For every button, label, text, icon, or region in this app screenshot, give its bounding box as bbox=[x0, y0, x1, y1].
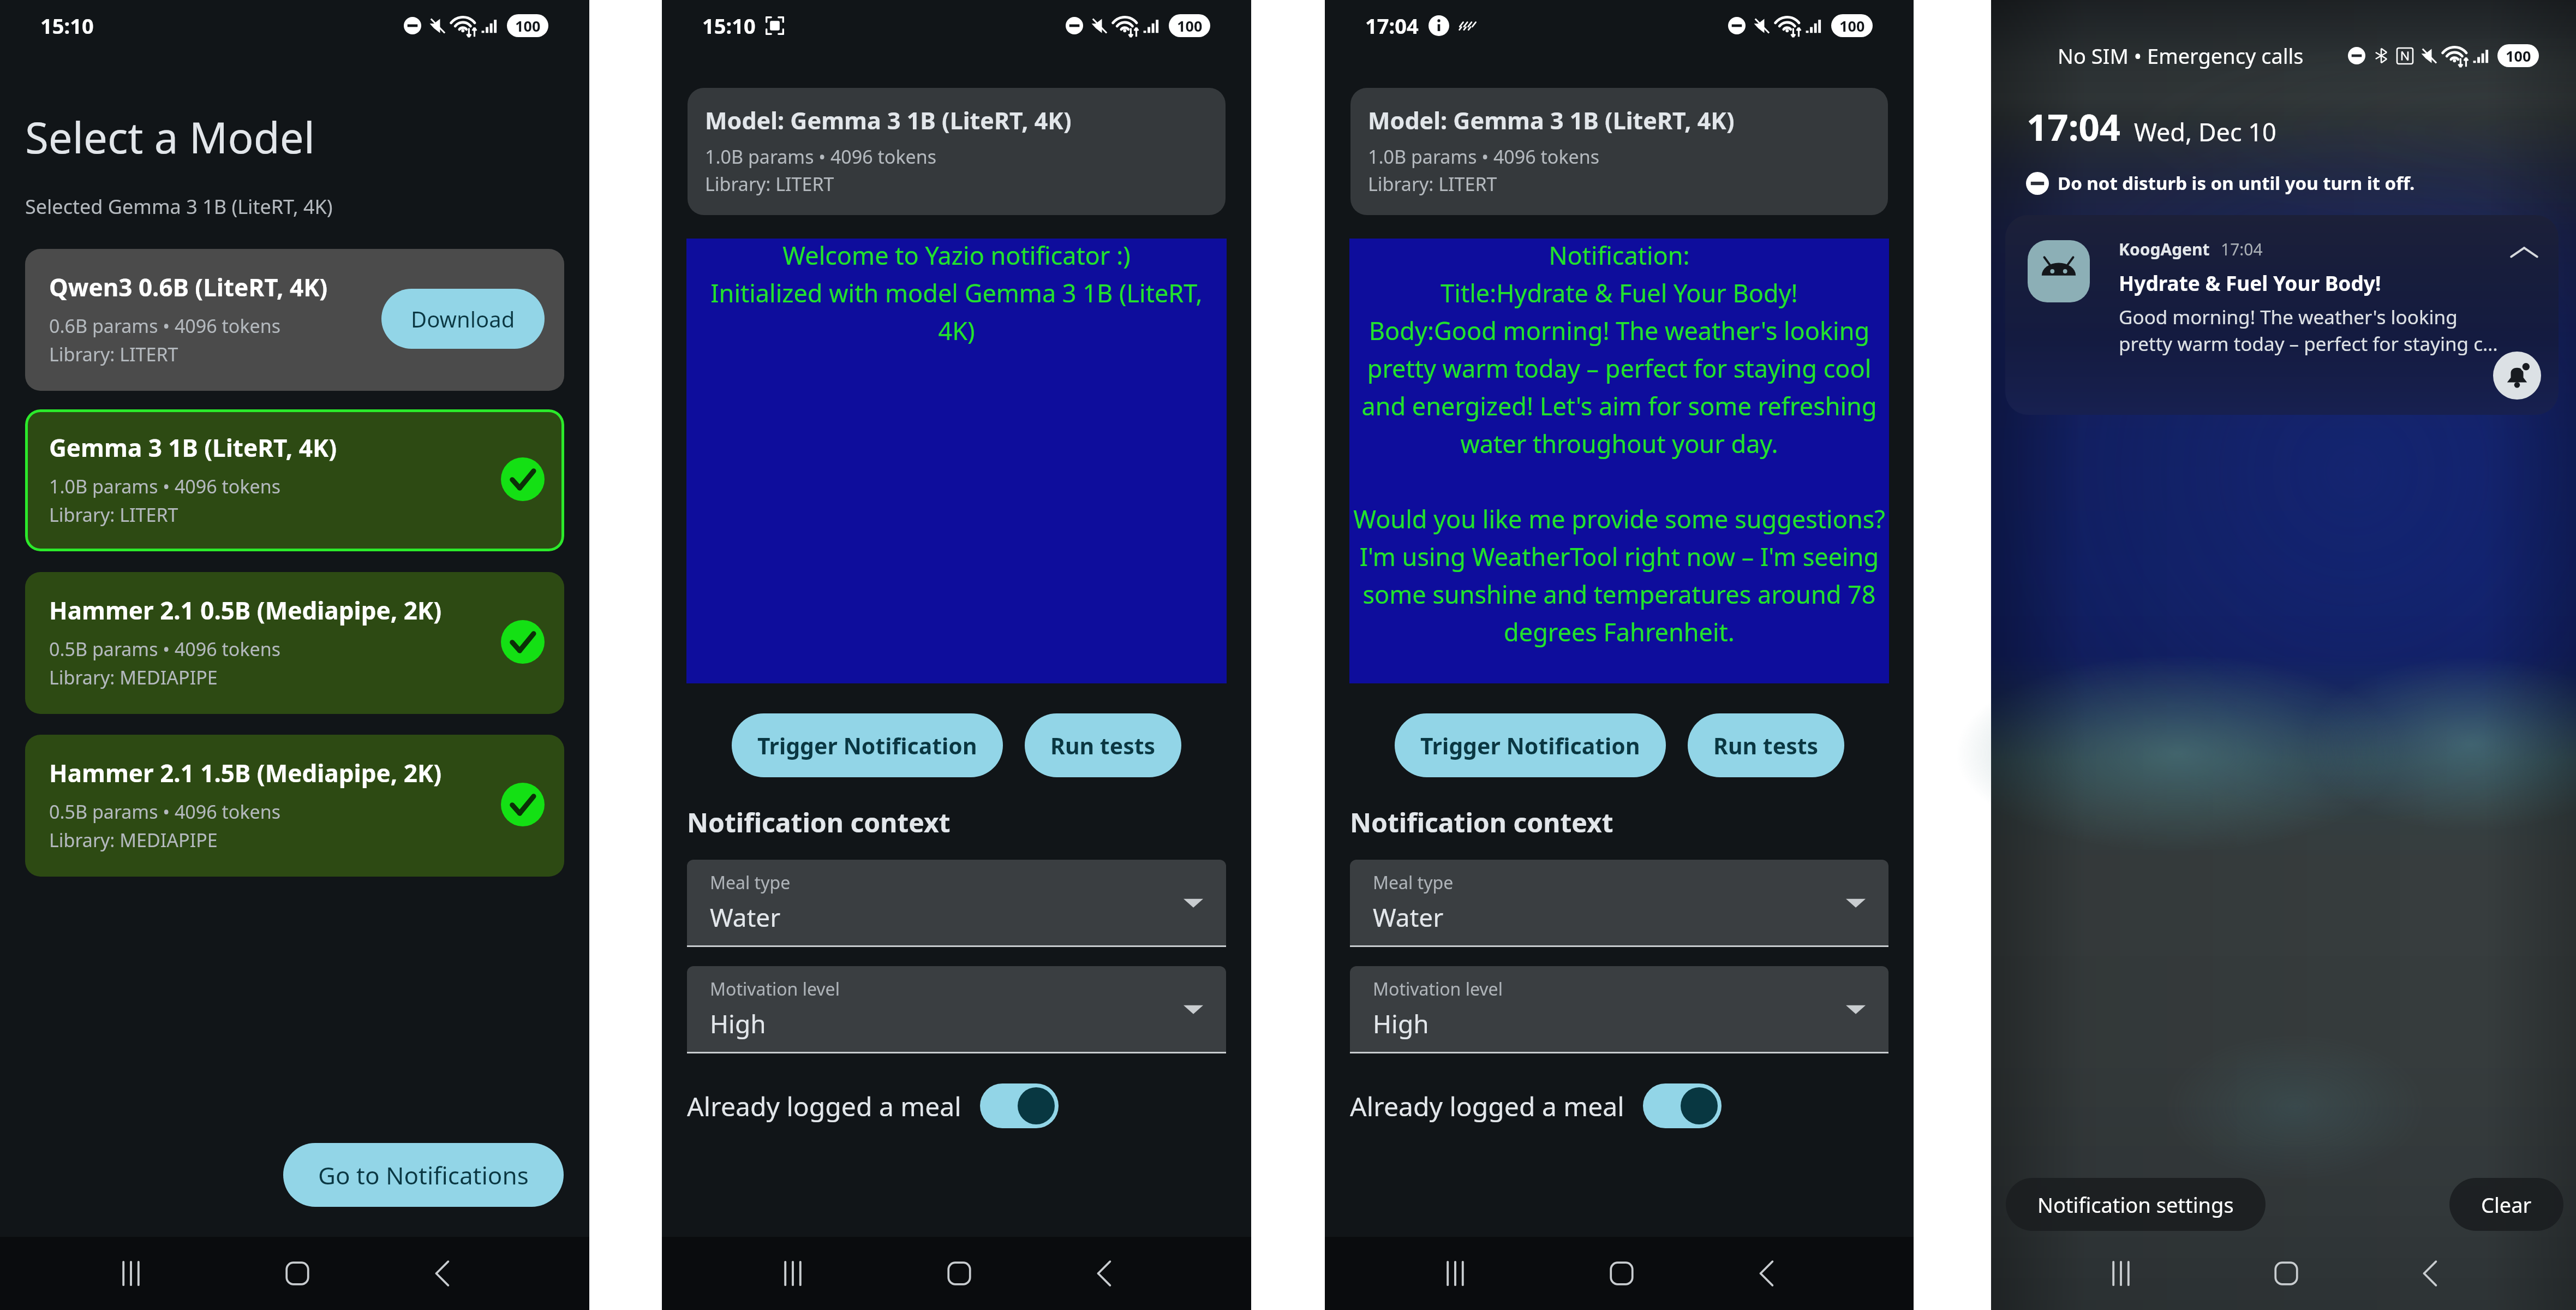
staticText: 0.5B params • 4096 tokens bbox=[49, 799, 281, 824]
button[interactable]: Recents bbox=[86, 1237, 176, 1310]
staticText: Motivation level bbox=[1373, 977, 1503, 1001]
staticText: Notification settings bbox=[2037, 1190, 2234, 1219]
button[interactable]: Model: Gemma 3 1B (LiteRT, 4K) bbox=[688, 88, 1226, 215]
button[interactable]: Run tests bbox=[1025, 713, 1181, 777]
button[interactable]: Clear bbox=[2449, 1178, 2563, 1231]
staticText: Do not disturb is on until you turn it o… bbox=[2058, 171, 2415, 195]
staticText: Library: LITERT bbox=[49, 342, 178, 367]
staticText: Hammer 2.1 0.5B (Mediapipe, 2K) bbox=[49, 594, 442, 627]
staticText: Trigger Notification bbox=[1420, 730, 1640, 761]
staticText: Library: LITERT bbox=[1368, 171, 1497, 196]
button[interactable]: Back bbox=[2386, 1237, 2475, 1310]
staticText: Trigger Notification bbox=[757, 730, 977, 761]
button[interactable]: Meal type bbox=[1350, 860, 1888, 945]
button[interactable]: Back bbox=[1722, 1237, 1812, 1310]
staticText: Good morning! The weather's looking pret… bbox=[2119, 304, 2498, 357]
staticText: Library: MEDIAPIPE bbox=[49, 827, 218, 853]
staticText: KoogAgent bbox=[2119, 238, 2210, 260]
button[interactable]: Run tests bbox=[1688, 713, 1844, 777]
button[interactable]: Download bbox=[381, 289, 545, 349]
staticText: 17:04 bbox=[2221, 238, 2263, 260]
button[interactable]: Trigger Notification bbox=[732, 713, 1003, 777]
staticText: Meal type bbox=[1373, 871, 1454, 895]
staticText: High bbox=[1373, 1007, 1429, 1041]
button[interactable]: Back bbox=[1060, 1237, 1149, 1310]
button[interactable]: Trigger Notification bbox=[1395, 713, 1666, 777]
button[interactable]: Recents bbox=[748, 1237, 838, 1310]
staticText: 17:04 bbox=[1365, 11, 1419, 40]
staticText: Library: LITERT bbox=[49, 502, 178, 527]
staticText: Meal type bbox=[710, 871, 791, 895]
button[interactable]: Meal type bbox=[687, 860, 1226, 945]
button[interactable]: Motivation level bbox=[1350, 966, 1888, 1052]
button[interactable]: KoogAgent bbox=[2005, 215, 2559, 415]
staticText: 100 bbox=[1839, 16, 1865, 36]
staticText: Run tests bbox=[1713, 730, 1819, 761]
button[interactable]: Collapse notification bbox=[2509, 239, 2539, 269]
staticText: Already logged a meal bbox=[1350, 1088, 1624, 1124]
staticText: Library: LITERT bbox=[705, 171, 834, 196]
staticText: 15:10 bbox=[702, 11, 756, 40]
button[interactable]: Snooze notification bbox=[2493, 352, 2541, 400]
button[interactable]: Motivation level bbox=[687, 966, 1226, 1052]
button[interactable]: Notification settings bbox=[2006, 1178, 2266, 1231]
button[interactable]: Gemma 3 1B (LiteRT, 4K) bbox=[25, 409, 564, 551]
button[interactable]: Hammer 2.1 0.5B (Mediapipe, 2K) bbox=[25, 572, 564, 714]
staticText: Already logged a meal bbox=[687, 1088, 961, 1124]
button[interactable]: Go to Notifications bbox=[283, 1143, 564, 1207]
button[interactable]: Already logged a meal bbox=[687, 1083, 1226, 1128]
staticText: High bbox=[710, 1007, 766, 1041]
staticText: Go to Notifications bbox=[318, 1159, 529, 1192]
staticText: Notification context bbox=[687, 805, 951, 840]
staticText: Model: Gemma 3 1B (LiteRT, 4K) bbox=[1368, 104, 1735, 136]
staticText: Library: MEDIAPIPE bbox=[49, 665, 218, 690]
staticText: 100 bbox=[515, 16, 541, 36]
button[interactable]: Home bbox=[1577, 1237, 1666, 1310]
staticText: Gemma 3 1B (LiteRT, 4K) bbox=[49, 431, 337, 464]
staticText: 15:10 bbox=[40, 11, 94, 40]
staticText: 1.0B params • 4096 tokens bbox=[705, 144, 937, 169]
button[interactable]: Hammer 2.1 1.5B (Mediapipe, 2K) bbox=[25, 735, 564, 877]
staticText: Welcome to Yazio notificator :) Initiali… bbox=[698, 239, 1215, 347]
button[interactable]: Model: Gemma 3 1B (LiteRT, 4K) bbox=[1350, 88, 1888, 215]
staticText: Qwen3 0.6B (LiteRT, 4K) bbox=[49, 271, 328, 303]
button[interactable]: Already logged a meal bbox=[1350, 1083, 1888, 1128]
staticText: Notification: Title:Hydrate & Fuel Your … bbox=[1350, 239, 1888, 648]
staticText: Model: Gemma 3 1B (LiteRT, 4K) bbox=[705, 104, 1072, 136]
staticText: Run tests bbox=[1050, 730, 1156, 761]
button[interactable]: Qwen3 0.6B (LiteRT, 4K) bbox=[25, 249, 564, 391]
staticText: No SIM • Emergency calls bbox=[2058, 41, 2304, 70]
staticText: Water bbox=[1373, 900, 1444, 934]
staticText: 17:04 bbox=[2027, 102, 2121, 151]
button[interactable]: Recents bbox=[1410, 1237, 1500, 1310]
button[interactable]: Home bbox=[2242, 1237, 2330, 1310]
button[interactable]: Back bbox=[398, 1237, 487, 1310]
button[interactable]: Home bbox=[915, 1237, 1004, 1310]
staticText: Water bbox=[710, 900, 781, 934]
staticText: Hydrate & Fuel Your Body! bbox=[2119, 269, 2381, 296]
staticText: 1.0B params • 4096 tokens bbox=[1368, 144, 1600, 169]
staticText: Wed, Dec 10 bbox=[2134, 115, 2276, 148]
staticText: 100 bbox=[1177, 16, 1203, 36]
staticText: Select a Model bbox=[25, 108, 315, 166]
staticText: 1.0B params • 4096 tokens bbox=[49, 474, 281, 499]
button[interactable]: Home bbox=[253, 1237, 342, 1310]
staticText: 0.6B params • 4096 tokens bbox=[49, 313, 281, 338]
staticText: 0.5B params • 4096 tokens bbox=[49, 636, 281, 662]
staticText: Selected Gemma 3 1B (LiteRT, 4K) bbox=[25, 193, 333, 220]
staticText: Notification context bbox=[1350, 805, 1613, 840]
button[interactable]: Recents bbox=[2076, 1237, 2165, 1310]
staticText: Download bbox=[411, 304, 515, 334]
staticText: Hammer 2.1 1.5B (Mediapipe, 2K) bbox=[49, 757, 442, 789]
staticText: Clear bbox=[2481, 1190, 2532, 1219]
staticText: 100 bbox=[2506, 46, 2531, 66]
staticText: Motivation level bbox=[710, 977, 840, 1001]
